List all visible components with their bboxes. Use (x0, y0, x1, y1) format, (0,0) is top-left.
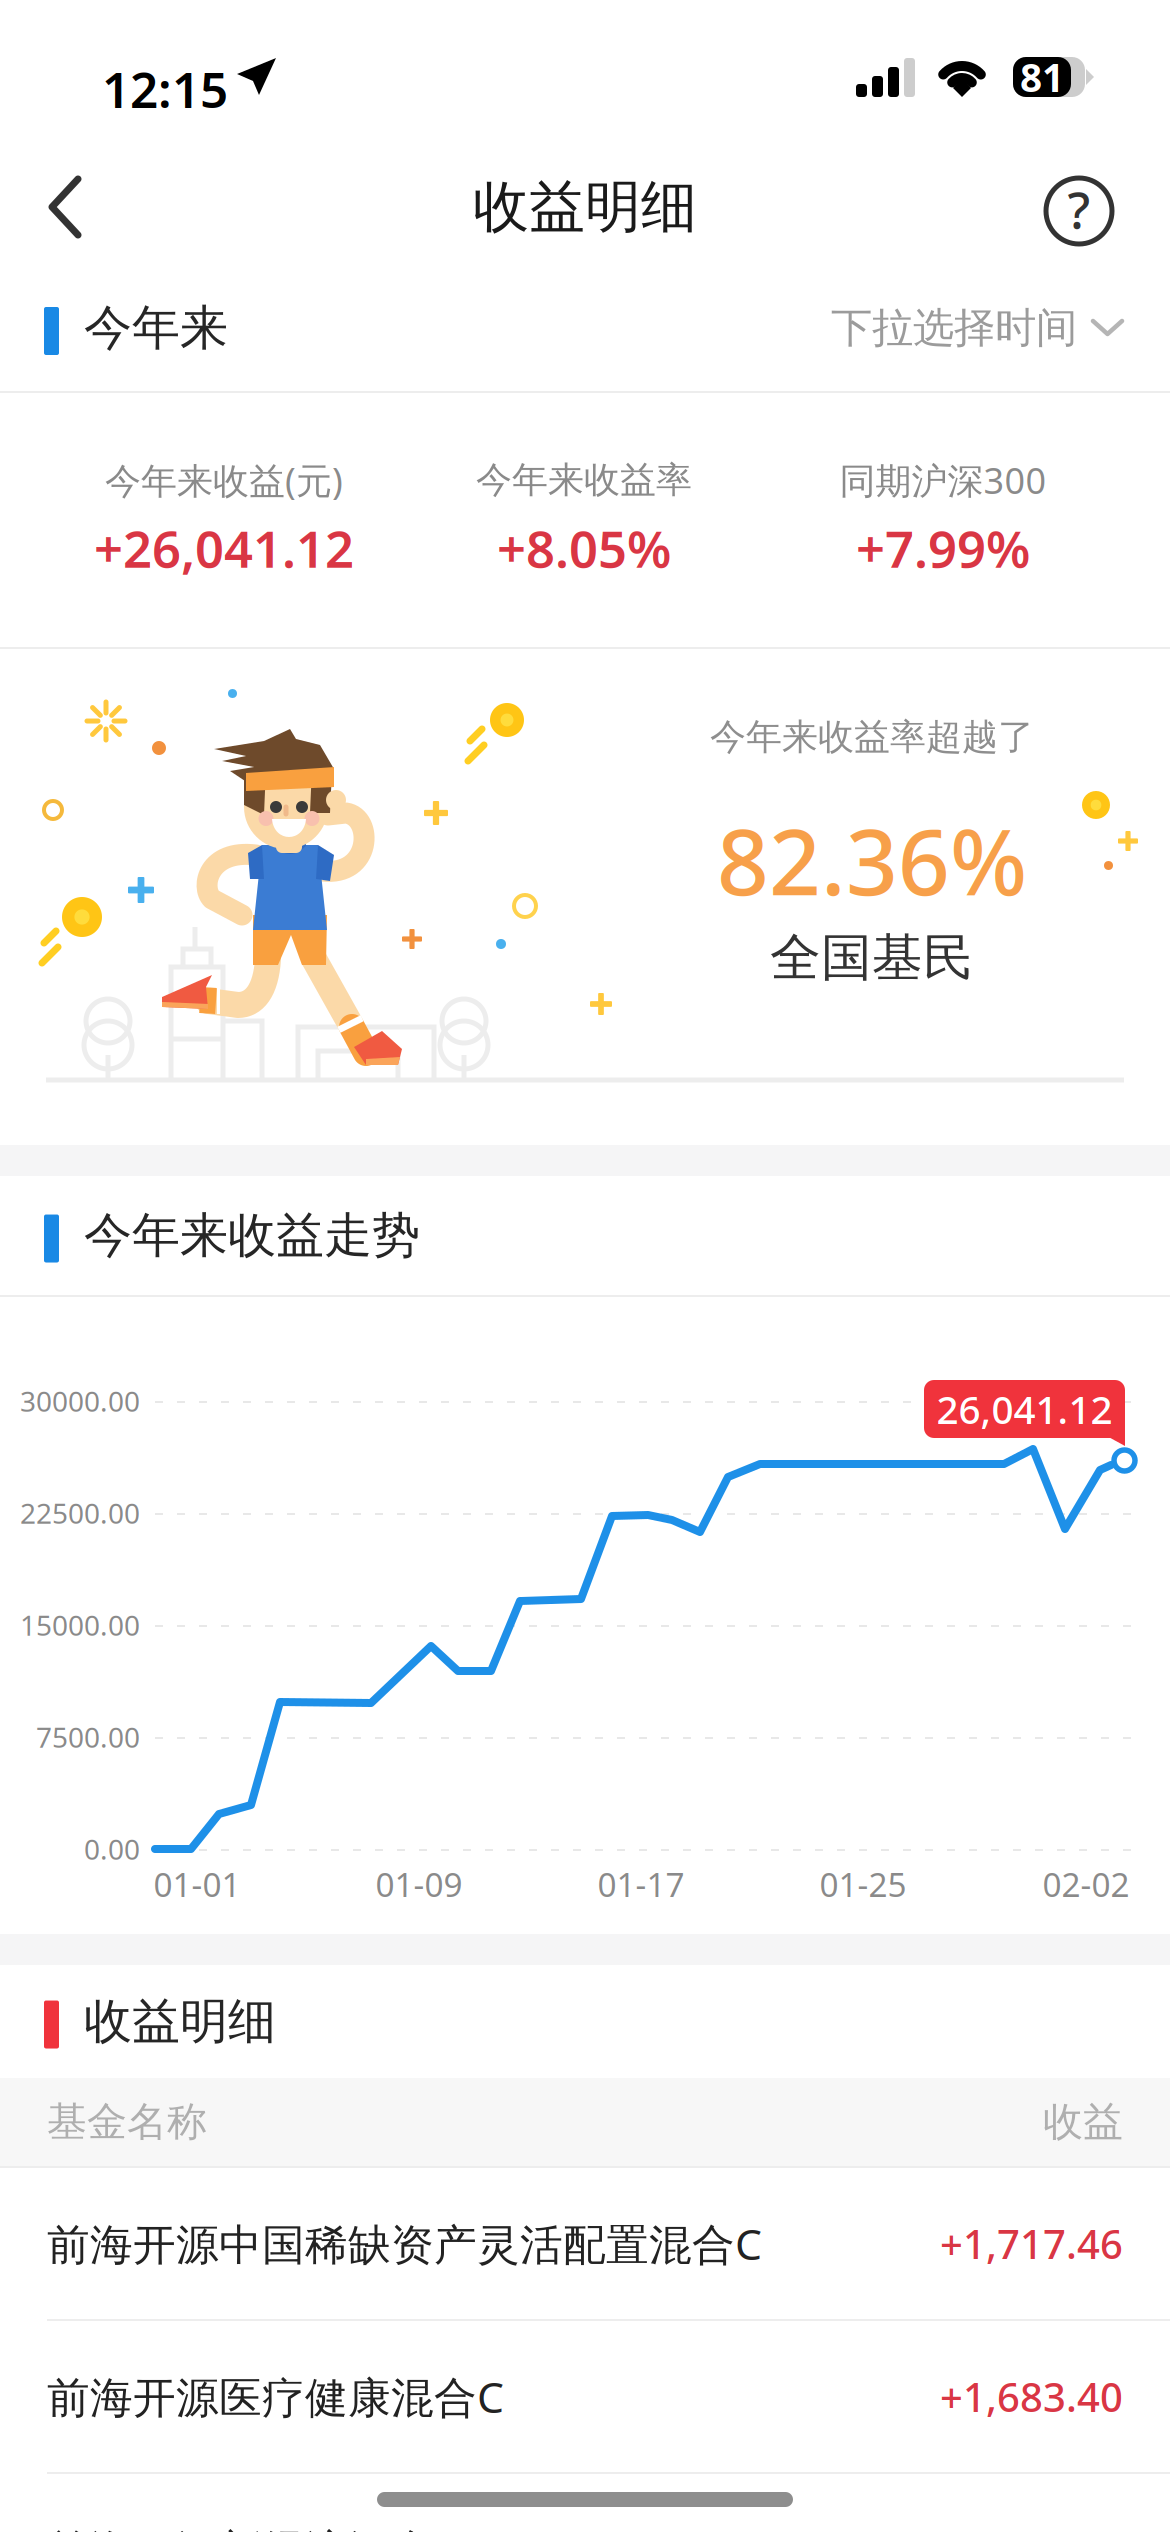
staticText: 01-09 (375, 1862, 462, 1906)
staticText: 前海开源医疗健康混合C (47, 2368, 504, 2425)
staticText: ? (1067, 175, 1090, 243)
staticText: 7500.00 (36, 1718, 140, 1756)
staticText: 15000.00 (20, 1606, 140, 1644)
staticText: 今年来收益率超越了 (710, 715, 1034, 759)
staticText: 今年来收益走势 (84, 1206, 420, 1265)
button[interactable]: 前海开源医疗健康混合C (0, 2321, 1170, 2472)
staticText: 81 (1020, 51, 1064, 103)
staticText: 今年来 (84, 298, 228, 357)
staticText: +7.99% (856, 514, 1030, 582)
staticText: 收益明细 (473, 173, 697, 241)
staticText: 12:15 (102, 56, 228, 121)
staticText: +1,683.40 (940, 2370, 1123, 2423)
staticText: 收益明细 (84, 1992, 276, 2051)
staticText: 前海开源新经济混合C (47, 2521, 461, 2532)
staticText: 02-02 (1042, 1862, 1129, 1906)
staticText: 01-01 (153, 1862, 240, 1906)
staticText: +26,041.12 (94, 514, 354, 582)
button[interactable]: 前海开源中国稀缺资产灵活配置混合C (0, 2168, 1170, 2319)
staticText: 今年来收益(元) (105, 456, 343, 504)
button[interactable]: 下拉选择时间 (807, 285, 1124, 371)
button[interactable]: 前海开源新经济混合C (0, 2521, 1170, 2532)
staticText: 0.00 (84, 1830, 140, 1868)
staticText: 01-17 (597, 1862, 684, 1906)
staticText: 30000.00 (20, 1382, 140, 1420)
staticText: 今年来收益率 (476, 458, 692, 502)
staticText: 基金名称 (47, 2097, 207, 2146)
button[interactable]: 返回 (18, 147, 112, 267)
staticText: 26,041.12 (936, 1383, 1112, 1435)
button[interactable]: 帮助 (1018, 150, 1140, 272)
staticText: 收益 (1043, 2097, 1123, 2146)
staticText: 前海开源中国稀缺资产灵活配置混合C (47, 2215, 762, 2272)
staticText: 01-25 (819, 1862, 906, 1906)
staticText: +8.05% (497, 514, 671, 582)
staticText: 同期沪深300 (839, 456, 1046, 504)
staticText: +1,717.46 (940, 2217, 1123, 2270)
staticText: 下拉选择时间 (831, 303, 1077, 353)
staticText: 全国基民 (770, 927, 974, 989)
staticText: 22500.00 (20, 1494, 140, 1532)
staticText: 82.36% (717, 800, 1027, 920)
